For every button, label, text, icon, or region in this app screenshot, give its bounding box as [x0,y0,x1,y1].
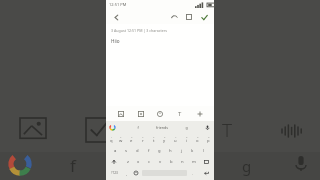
button[interactable]: Google [108,123,117,132]
staticText: x [137,159,140,165]
staticText: u [174,138,177,144]
staticText: f [148,148,150,154]
button[interactable]: Record audio [154,108,165,119]
staticText: w [119,138,123,144]
button[interactable]: f [143,145,154,156]
staticText: c [148,159,151,165]
button[interactable]: 8 [181,133,192,145]
staticText: o [196,138,199,144]
staticText: b [170,159,173,165]
button[interactable]: 4 [137,133,148,145]
button[interactable]: More options [194,108,205,119]
staticText: z [127,159,129,165]
button[interactable]: b [166,156,177,167]
button[interactable]: Save [198,11,210,23]
staticText: 8 [186,135,188,138]
staticText: v [159,159,162,165]
staticText: Hiio [111,38,120,44]
button[interactable]: a [110,145,121,156]
button[interactable]: Scan document [135,108,146,119]
staticText: ?123 [111,171,118,175]
staticText: T [178,110,182,118]
staticText: friends [156,125,168,130]
staticText: 0 [208,135,210,138]
staticText: q [110,138,113,144]
staticText: 2 [120,135,122,138]
button[interactable]: 7 [170,133,181,145]
staticText: d [136,148,139,154]
button[interactable]: h [165,145,176,156]
button[interactable]: friends [147,121,177,133]
staticText: k [191,148,194,154]
button[interactable]: Emoji [122,167,131,179]
staticText: f [137,125,139,130]
button[interactable]: d [132,145,143,156]
button[interactable]: z [122,156,133,167]
staticText: 3 [131,135,133,138]
button[interactable]: Voice input [203,123,212,132]
staticText: a [114,148,117,154]
button[interactable]: Insert image [115,108,126,119]
staticText: 6 [164,135,166,138]
button[interactable]: 6 [159,133,170,145]
staticText: t [153,138,155,144]
staticText: g [242,156,252,176]
staticText: 12:51 PM [109,2,127,7]
button[interactable]: g [177,121,196,133]
staticText: 9 [197,135,199,138]
button[interactable]: Enter [198,167,214,179]
button[interactable]: 9 [192,133,203,145]
staticText: j [181,148,183,154]
button[interactable]: Pin note [183,11,195,23]
staticText: 5 [153,135,155,138]
button[interactable]: 3 [126,133,137,145]
button[interactable]: j [176,145,187,156]
button[interactable]: 0 [203,133,214,145]
staticText: T [222,117,233,143]
button[interactable]: s [121,145,132,156]
staticText: g [185,125,188,130]
button[interactable]: v [155,156,166,167]
staticText: 3 August 12:51 PM | 3 characters [111,28,167,33]
button[interactable]: 5 [148,133,159,145]
button[interactable]: k [187,145,198,156]
button[interactable]: x [133,156,144,167]
button[interactable]: n [177,156,188,167]
button[interactable]: 2 [116,133,126,145]
button[interactable]: Emoji keyboard [131,167,141,179]
button[interactable]: ?123 [106,167,122,179]
staticText: 4 [142,135,144,138]
staticText: l [203,148,205,154]
staticText: g [158,148,161,154]
button[interactable]: l [198,145,209,156]
staticText: s [125,148,128,154]
button[interactable]: Undo [168,11,180,23]
staticText: h [169,148,172,154]
staticText: i [186,138,188,144]
staticText: y [163,138,166,144]
button[interactable]: Text format [174,108,185,119]
staticText: 7 [175,135,177,138]
button[interactable]: Backspace [199,156,214,167]
staticText: f [70,154,76,177]
staticText: 1 [111,135,113,138]
button[interactable]: 1 [106,133,116,145]
staticText: p [207,138,210,144]
button[interactable]: Shift [106,156,122,167]
staticText: r [142,138,144,144]
button[interactable]: g [154,145,165,156]
button[interactable]: c [144,156,155,167]
staticText: e [130,138,133,144]
button[interactable]: f [128,121,147,133]
staticText: m [192,159,196,165]
staticText: , [126,171,128,176]
staticText: n [181,159,184,165]
button[interactable]: m [188,156,199,167]
staticText: . [192,171,194,176]
button[interactable]: Back [110,11,122,23]
